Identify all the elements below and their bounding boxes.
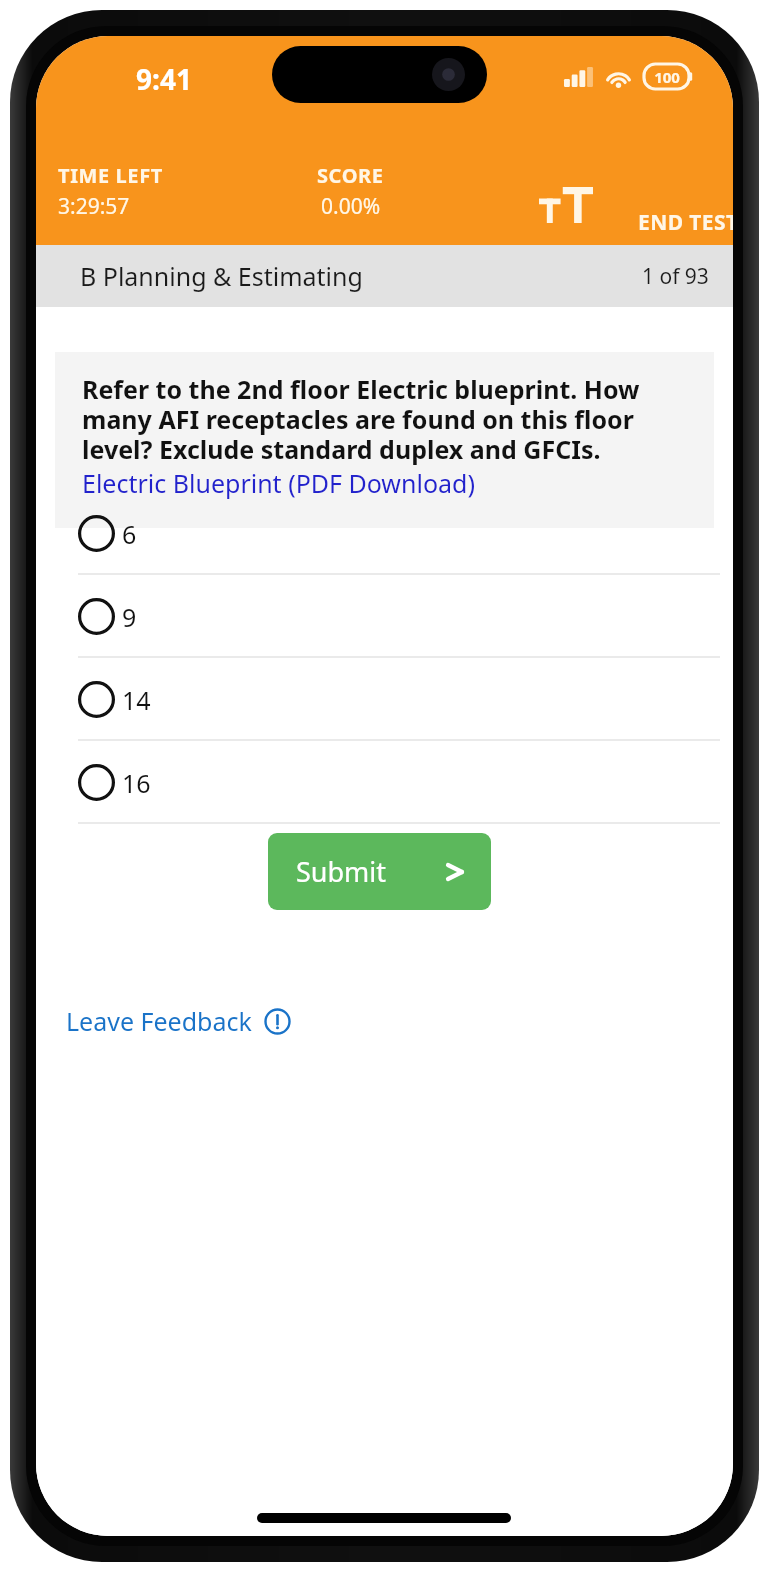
staticText: SCORE [317, 162, 384, 189]
staticText: Refer to the 2nd floor Electric blueprin… [82, 372, 696, 466]
button[interactable]: Submit [268, 833, 491, 910]
button[interactable]: END TEST [622, 196, 733, 248]
button[interactable]: Electric Blueprint (PDF Download) [82, 466, 475, 500]
staticText: 9 [122, 600, 137, 634]
staticText: 1 of 93 [642, 262, 709, 291]
button[interactable]: Leave Feedback [66, 997, 291, 1045]
staticText: 6 [122, 517, 137, 551]
staticText: 100 [654, 67, 680, 87]
staticText: 3:29:57 [58, 192, 130, 221]
staticText: Submit [296, 853, 387, 890]
button[interactable]: B Planning & Estimating [36, 245, 733, 307]
button[interactable]: Text size [524, 174, 608, 236]
staticText: Leave Feedback [66, 1004, 252, 1038]
button[interactable]: 16 [36, 741, 733, 824]
staticText: 9:41 [136, 60, 192, 98]
staticText: B Planning & Estimating [80, 259, 363, 293]
staticText: Electric Blueprint (PDF Download) [82, 466, 475, 500]
staticText: END TEST [638, 208, 733, 237]
staticText: TIME LEFT [58, 162, 163, 189]
button[interactable]: 9 [36, 575, 733, 658]
staticText: 16 [122, 766, 151, 800]
staticText: 0.00% [321, 192, 381, 221]
button[interactable]: 14 [36, 658, 733, 741]
button[interactable]: 6 [36, 492, 733, 575]
staticText: 14 [122, 683, 151, 717]
